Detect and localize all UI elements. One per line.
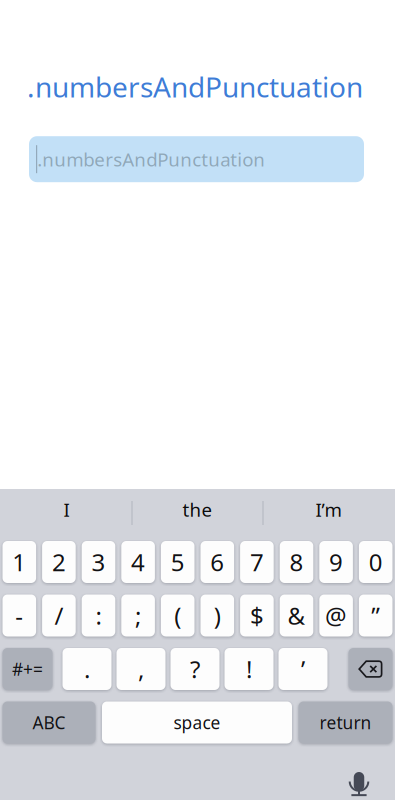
staticText: 1 bbox=[12, 546, 26, 578]
staticText: ” bbox=[371, 600, 380, 631]
button[interactable]: $ bbox=[240, 594, 274, 636]
staticText: .numbersAndPunctuation bbox=[27, 68, 363, 105]
staticText: : bbox=[95, 600, 101, 631]
button[interactable]: ; bbox=[121, 594, 155, 636]
button[interactable]: the bbox=[132, 488, 262, 542]
staticText: , bbox=[138, 653, 144, 685]
button[interactable]: / bbox=[42, 594, 76, 636]
staticText: & bbox=[287, 600, 305, 631]
staticText: 6 bbox=[210, 546, 224, 578]
staticText: return bbox=[319, 711, 371, 734]
staticText: ) bbox=[214, 600, 221, 631]
staticText: @ bbox=[325, 600, 347, 631]
staticText: / bbox=[54, 600, 63, 631]
staticText: I bbox=[63, 497, 69, 522]
staticText: ’ bbox=[301, 653, 305, 685]
staticText: ( bbox=[174, 600, 181, 631]
button[interactable]: 5 bbox=[161, 541, 194, 583]
button[interactable]: 6 bbox=[200, 541, 234, 583]
staticText: . bbox=[84, 653, 90, 685]
button[interactable]: - bbox=[2, 594, 36, 636]
button[interactable]: #+= bbox=[2, 648, 52, 690]
button[interactable]: 0 bbox=[359, 541, 392, 583]
button[interactable]: 1 bbox=[2, 541, 36, 583]
staticText: 4 bbox=[131, 546, 145, 578]
staticText: 5 bbox=[171, 546, 185, 578]
staticText: I’m bbox=[315, 497, 341, 522]
button[interactable]: 9 bbox=[319, 541, 353, 583]
button[interactable]: 2 bbox=[42, 541, 76, 583]
button[interactable]: space bbox=[102, 701, 292, 743]
button[interactable]: ) bbox=[200, 594, 234, 636]
staticText: space bbox=[173, 711, 220, 734]
staticText: $ bbox=[250, 600, 264, 631]
staticText: 3 bbox=[91, 546, 105, 578]
staticText: 0 bbox=[369, 546, 383, 578]
button[interactable]: : bbox=[82, 594, 115, 636]
button[interactable]: ( bbox=[161, 594, 194, 636]
staticText: ? bbox=[190, 653, 200, 685]
button[interactable]: . bbox=[62, 648, 111, 690]
button[interactable]: & bbox=[280, 594, 313, 636]
staticText: .numbersAndPunctuation bbox=[37, 147, 265, 172]
staticText: 7 bbox=[250, 546, 264, 578]
staticText: - bbox=[15, 600, 23, 631]
button[interactable]: Delete bbox=[348, 648, 392, 690]
button[interactable]: ’ bbox=[278, 648, 327, 690]
staticText: #+= bbox=[12, 657, 43, 680]
button[interactable]: ABC bbox=[2, 701, 95, 743]
staticText: 2 bbox=[52, 546, 66, 578]
staticText: ! bbox=[246, 653, 252, 685]
button[interactable]: 3 bbox=[82, 541, 115, 583]
button[interactable]: return bbox=[298, 701, 392, 743]
button[interactable]: I’m bbox=[263, 488, 393, 542]
button[interactable]: ! bbox=[224, 648, 273, 690]
staticText: 8 bbox=[289, 546, 303, 578]
button[interactable]: 7 bbox=[240, 541, 274, 583]
staticText: ABC bbox=[32, 711, 65, 734]
button[interactable]: 4 bbox=[121, 541, 155, 583]
button[interactable]: , bbox=[116, 648, 165, 690]
staticText: ; bbox=[135, 600, 141, 631]
staticText: the bbox=[182, 497, 212, 522]
button[interactable]: I bbox=[1, 488, 131, 542]
button[interactable]: 8 bbox=[280, 541, 313, 583]
staticText: 9 bbox=[329, 546, 343, 578]
button[interactable]: Dictation bbox=[339, 767, 379, 800]
button[interactable]: @ bbox=[319, 594, 353, 636]
button[interactable]: ? bbox=[170, 648, 219, 690]
button[interactable]: ” bbox=[359, 594, 392, 636]
